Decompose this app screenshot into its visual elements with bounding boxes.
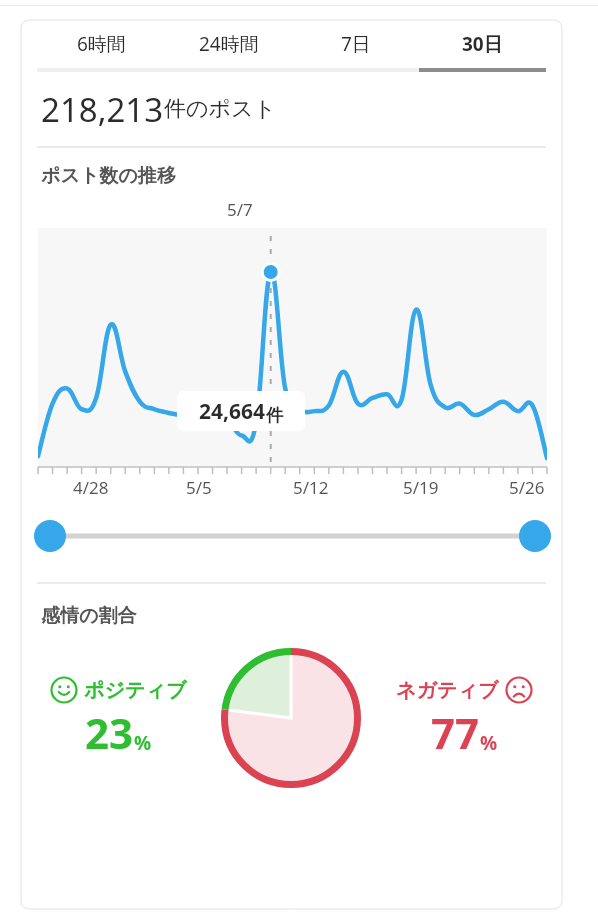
staticText: ポジティブ (84, 678, 187, 703)
button[interactable]: ポジティブ (21, 676, 216, 761)
staticText: 件 (266, 405, 283, 426)
staticText: ネガティブ (396, 678, 499, 703)
button[interactable]: 24時間 (165, 20, 292, 68)
button[interactable]: 7日 (292, 20, 419, 68)
staticText: 23 (85, 704, 134, 761)
staticText: % (480, 730, 498, 756)
button[interactable]: 6時間 (37, 20, 165, 68)
staticText: 77 (431, 704, 480, 761)
staticText: % (134, 730, 152, 756)
button[interactable]: ネガティブ (366, 676, 562, 761)
staticText: 感情の割合 (41, 604, 137, 628)
staticText: 5/12 (293, 476, 329, 499)
staticText: 218,213 (41, 87, 164, 132)
button[interactable]: 24,664 (177, 391, 305, 431)
staticText: 件のポスト (164, 95, 277, 123)
staticText: 5/7 (227, 198, 253, 221)
staticText: 6時間 (77, 31, 126, 57)
staticText: 5/26 (509, 476, 545, 499)
staticText: 24,664 (199, 397, 266, 426)
staticText: 5/19 (403, 476, 439, 499)
button[interactable]: 期間スライダー (21, 508, 562, 564)
staticText: 5/5 (186, 476, 212, 499)
staticText: 24時間 (199, 31, 259, 57)
button[interactable]: 30日 (419, 20, 546, 68)
staticText: 4/28 (73, 476, 109, 499)
staticText: 7日 (341, 31, 371, 57)
staticText: 30日 (462, 31, 503, 57)
staticText: ポスト数の推移 (41, 164, 176, 188)
